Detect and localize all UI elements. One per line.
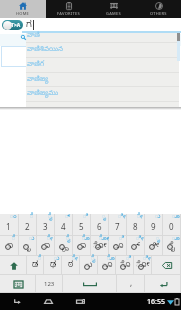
staticText: ೂ xyxy=(102,261,113,272)
staticText: ೀ xyxy=(136,235,144,243)
staticText: 0 xyxy=(169,221,174,232)
button[interactable]: ೈ xyxy=(163,236,181,256)
staticText: వాణిగ xyxy=(27,60,45,69)
staticText: 16:55 xyxy=(147,297,165,307)
staticText: ಠ xyxy=(68,261,74,272)
button[interactable]: OTHERS xyxy=(136,0,181,18)
staticText: ೈ xyxy=(48,213,53,221)
button[interactable]: ೀ xyxy=(145,236,163,256)
button[interactable]: 9 xyxy=(145,214,163,236)
button[interactable]: ೂ xyxy=(98,256,116,275)
button[interactable]: 123 xyxy=(36,275,63,293)
staticText: ್ xyxy=(65,213,71,221)
staticText: T>A xyxy=(11,22,21,29)
button[interactable]: 2 xyxy=(19,214,37,236)
staticText: ೊ xyxy=(82,235,90,243)
button[interactable]: ಡ xyxy=(27,256,44,275)
button[interactable]: Shift xyxy=(0,256,27,275)
button[interactable]: GAMES xyxy=(91,0,136,18)
button[interactable]: ಾ xyxy=(0,236,19,256)
button[interactable]: 3 xyxy=(37,214,55,236)
staticText: ೊ xyxy=(120,261,131,272)
button[interactable]: 4 xyxy=(55,214,73,236)
button[interactable]: 7 xyxy=(109,214,127,236)
staticText: వాణి xyxy=(27,31,41,40)
button[interactable]: ೄ xyxy=(55,236,73,256)
staticText: 6 xyxy=(97,221,102,232)
button[interactable]: ೂ xyxy=(109,236,127,256)
staticText: ೆ xyxy=(38,255,42,263)
button[interactable]: Backspace xyxy=(152,256,181,275)
staticText: ೂ xyxy=(172,213,180,221)
button[interactable]: Transliteration toggle xyxy=(2,20,23,30)
staticText: HOME xyxy=(16,11,30,16)
staticText: ೀ xyxy=(118,213,126,221)
staticText: ೆ xyxy=(30,213,34,221)
staticText: ೃ xyxy=(156,235,161,243)
staticText: ಿ xyxy=(83,213,89,221)
staticText: 7 xyxy=(115,221,120,232)
button[interactable]: Space xyxy=(63,275,117,293)
button[interactable]: ಢ xyxy=(44,256,62,275)
staticText: , xyxy=(130,277,133,288)
button[interactable]: ಾ xyxy=(73,236,91,256)
staticText: ೇ xyxy=(72,255,78,263)
staticText: ಢ xyxy=(50,261,57,272)
button[interactable]: వాణిగ xyxy=(26,57,179,72)
button[interactable]: 0 xyxy=(163,214,181,236)
button[interactable]: Switch keyboard xyxy=(0,275,36,293)
staticText: వాణిజ్య xyxy=(27,75,49,84)
staticText: ೈ xyxy=(66,235,71,243)
button[interactable]: వాణి xyxy=(26,28,179,43)
staticText: ೊ xyxy=(107,255,115,263)
staticText: ಾ xyxy=(78,242,87,253)
button[interactable]: 6 xyxy=(91,214,109,236)
button[interactable]: 1 xyxy=(0,214,19,236)
button[interactable]: వాణిజ్య xyxy=(26,72,179,87)
button[interactable]: 8 xyxy=(127,214,145,236)
staticText: 4 xyxy=(61,221,66,232)
staticText: ೋ xyxy=(136,261,150,272)
button[interactable]: , xyxy=(117,275,145,293)
button[interactable]: HOME xyxy=(0,0,46,18)
staticText: ಗ xyxy=(26,20,32,32)
staticText: ು xyxy=(85,261,93,272)
staticText: ೈ xyxy=(91,255,96,263)
staticText: OTHERS xyxy=(150,11,167,16)
staticText: 3 xyxy=(43,221,48,232)
staticText: ೆ xyxy=(12,235,16,243)
button[interactable]: ಠ xyxy=(62,256,80,275)
button[interactable]: వాణిజ్యము xyxy=(26,86,179,101)
staticText: ಾ xyxy=(42,242,51,253)
staticText: ಾ xyxy=(5,242,14,253)
button[interactable]: ೃ xyxy=(19,236,37,256)
staticText: 9 xyxy=(151,221,156,232)
button[interactable]: వాణిశివయిన xyxy=(26,42,179,57)
button[interactable]: ೋ xyxy=(91,236,109,256)
staticText: వాణిజ్యము xyxy=(27,89,59,98)
button[interactable]: Back xyxy=(0,293,32,310)
staticText: 5 xyxy=(79,221,84,232)
button[interactable]: ್ xyxy=(127,236,145,256)
button[interactable]: ೋ xyxy=(134,256,152,275)
staticText: ಡ xyxy=(32,261,39,272)
button[interactable]: ಾ xyxy=(37,236,55,256)
staticText: ೄ xyxy=(60,242,69,253)
staticText: ೋ xyxy=(93,242,107,253)
staticText: ಿ xyxy=(119,235,125,243)
staticText: వాణిశివయిన xyxy=(27,45,63,54)
staticText: 1 xyxy=(6,221,11,232)
button[interactable]: Enter xyxy=(145,275,181,293)
button[interactable]: ೊ xyxy=(116,256,134,275)
staticText: ಂ xyxy=(10,213,17,221)
button[interactable]: FAVORITES xyxy=(46,0,91,18)
staticText: FAVORITES xyxy=(57,11,80,16)
staticText: ೃ xyxy=(25,242,31,253)
button[interactable]: Recent apps xyxy=(64,293,96,310)
staticText: ೈ xyxy=(169,242,175,253)
button[interactable]: Home xyxy=(32,293,64,310)
staticText: ೀ xyxy=(149,242,160,253)
staticText: 8 xyxy=(133,221,138,232)
button[interactable]: ು xyxy=(80,256,98,275)
button[interactable]: 5 xyxy=(73,214,91,236)
